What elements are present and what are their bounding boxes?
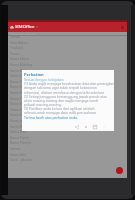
staticText: Nama Blok [10, 125, 27, 129]
staticText: Nama Jabatan [10, 119, 32, 123]
staticText: Terima kasih atas perhatian anda. [24, 115, 78, 120]
staticText: Nama Giat [10, 85, 26, 89]
staticText: Nama Blok [10, 153, 27, 157]
button[interactable]: Nama Tanam [8, 73, 127, 79]
button[interactable]: Umum [8, 34, 127, 40]
staticText: Nama Panen [10, 136, 30, 140]
button[interactable]: Nama Blok [8, 124, 127, 130]
button[interactable]: Nama Giat [8, 84, 127, 90]
staticText: Nama Afdeling [10, 63, 33, 67]
button[interactable]: Share [75, 125, 79, 129]
staticText: Nama Panen [10, 97, 30, 101]
staticText: Sesuai dengan kebijakan [24, 77, 64, 82]
staticText: informasi, silakan membaca dengan teliti… [24, 90, 105, 95]
staticText: Panen [10, 52, 20, 56]
staticText: Nama Kebun [10, 57, 30, 61]
staticText: pribadi masing-masing. [24, 102, 62, 107]
button[interactable]: Nama Mandor [8, 90, 127, 96]
staticText: Produksi [10, 46, 24, 50]
button[interactable]: Nama Karyawan [8, 112, 127, 118]
staticText: Perhatian [24, 72, 44, 77]
button[interactable]: Nama Blok [8, 68, 127, 74]
staticText: Ganti - jabatan [10, 158, 33, 162]
staticText: Nama Mandor [10, 91, 32, 95]
staticText: Nama Pekerja [10, 141, 31, 145]
staticText: akun masing-masing dan wajib menjaga san… [24, 98, 98, 103]
button[interactable]: Calendar [93, 125, 97, 129]
staticText: (1) Anda wajib menjaga kerahasiaan data … [24, 81, 114, 86]
button[interactable]: Nama Kebun [8, 107, 127, 113]
staticText: Cari data di sini [11, 32, 36, 35]
staticText: dengan seksama agar tidak terjadi keboco… [24, 85, 97, 90]
staticText: Nama Blok [10, 130, 27, 134]
button[interactable]: Nama Blok [8, 129, 127, 135]
button[interactable]: Bookmark [84, 125, 88, 129]
button[interactable]: Nama Panen [8, 96, 127, 102]
button[interactable]: Account [121, 26, 124, 29]
staticText: Nama Kebun [10, 108, 30, 112]
staticText: Nama Tanam [10, 74, 30, 78]
button[interactable]: Nama Pekerja [8, 79, 127, 85]
staticText: (3) Pastikan anda keluar dari aplikasi s… [24, 106, 95, 111]
button[interactable]: Add [116, 167, 123, 174]
staticText: Nama Karyawan [10, 113, 35, 117]
button[interactable]: Nama Afdeling [8, 62, 127, 68]
staticText: Nama Pekerja [10, 80, 31, 84]
button[interactable]: Nama Jabatan [8, 118, 127, 124]
staticText: Nama Kelompok [10, 102, 35, 106]
staticText: Nama Blok [10, 69, 27, 73]
staticText: selesai untuk menjaga data milik perusah… [24, 110, 97, 115]
staticText: Umum [10, 35, 21, 39]
button[interactable]: Home [10, 25, 14, 29]
staticText: Semua [10, 147, 21, 151]
button[interactable]: Nama Kelompok [8, 101, 127, 107]
staticText: SIMOffice [15, 24, 35, 30]
staticText: (2) Setiap pengguna bertanggung jawab pe… [24, 94, 107, 99]
button[interactable]: More options [102, 125, 106, 129]
staticText: Data Master [10, 41, 29, 45]
